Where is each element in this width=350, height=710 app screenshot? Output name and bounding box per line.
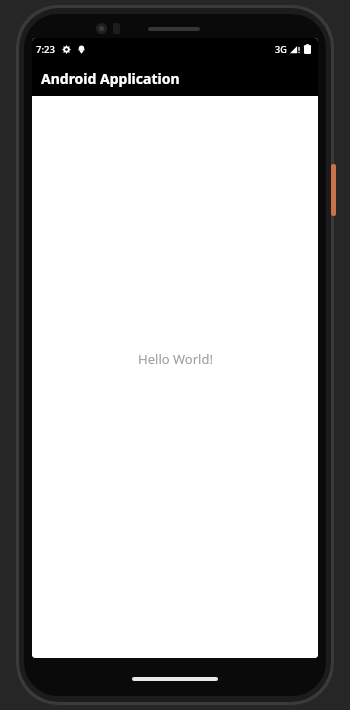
- other: Power button: [331, 164, 336, 216]
- staticText: Hello World!: [138, 350, 213, 368]
- button[interactable]: Android Application: [32, 60, 318, 96]
- other: Home gesture: [132, 677, 218, 681]
- staticText: Android Application: [41, 69, 180, 88]
- staticText: 3G: [275, 43, 287, 55]
- staticText: 7:23: [36, 43, 55, 56]
